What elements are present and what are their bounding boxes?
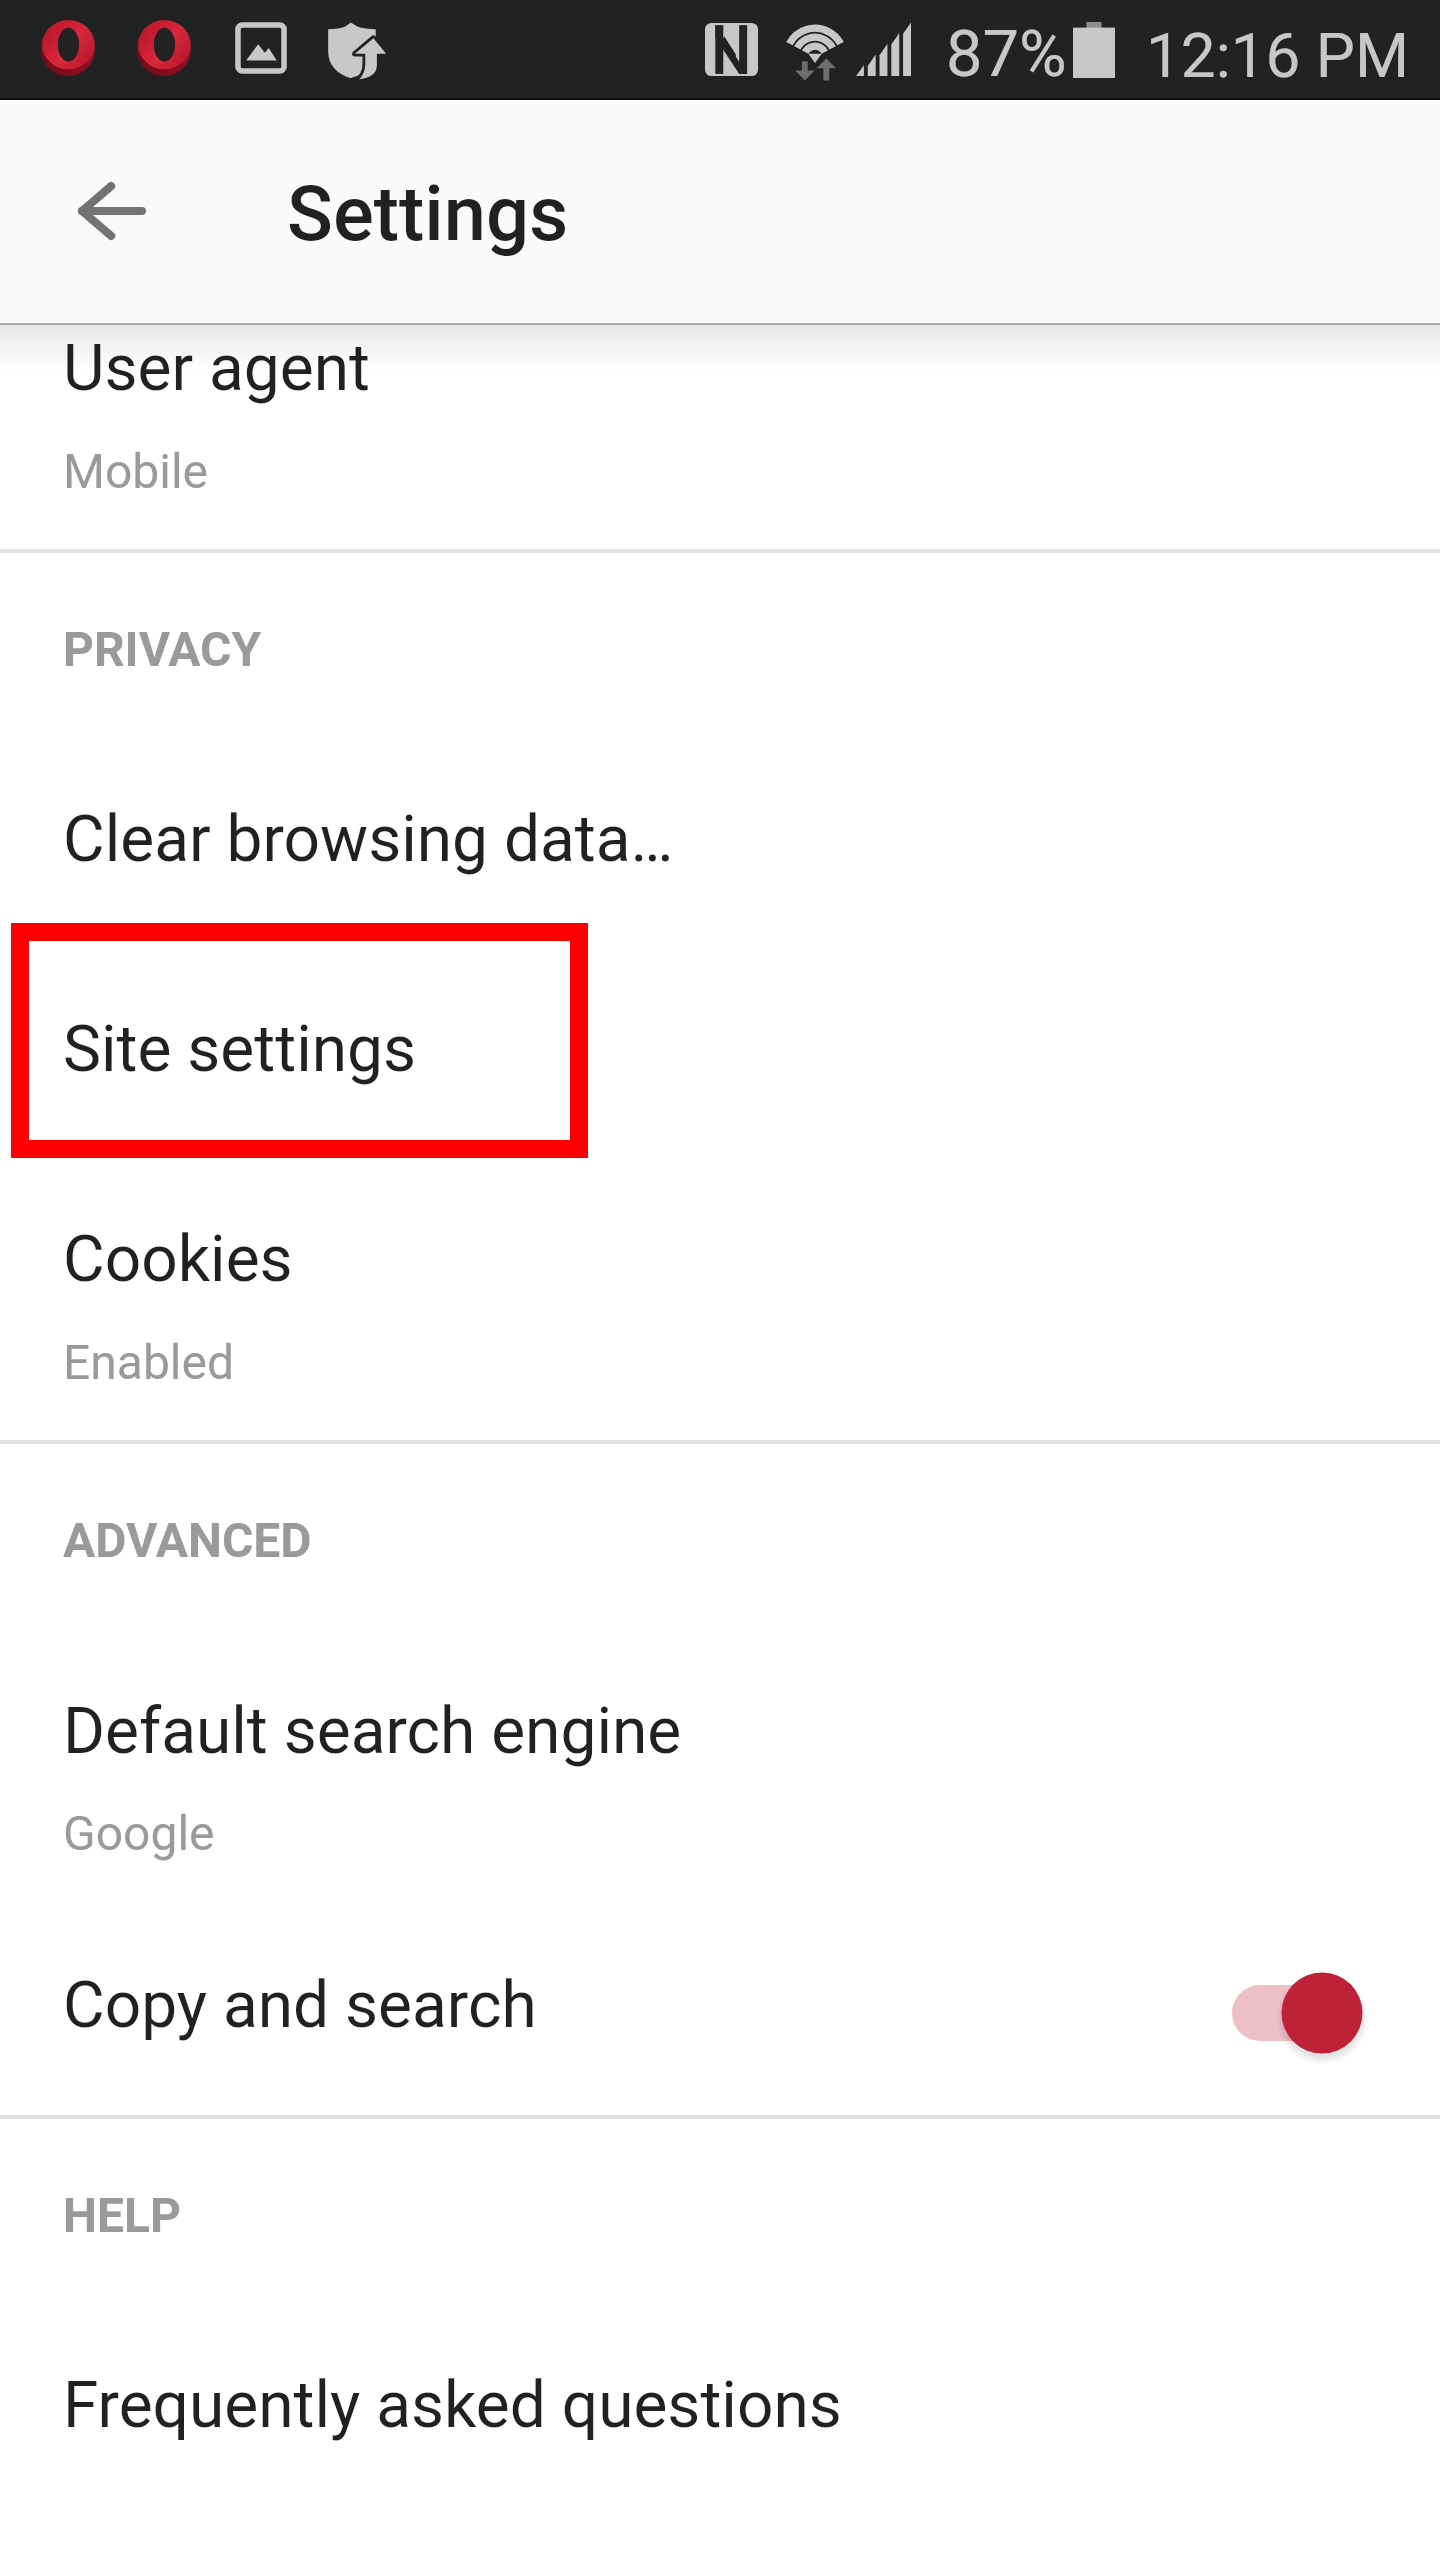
staticText: Default search engine <box>63 1694 682 1769</box>
button[interactable]: Copy and search <box>0 1930 1440 2115</box>
button[interactable]: Cookies <box>0 1158 1440 1440</box>
staticText: Site settings <box>63 1012 417 1087</box>
staticText: Mobile <box>63 443 209 499</box>
staticText: PRIVACY <box>63 621 262 677</box>
staticText: Google <box>63 1805 215 1861</box>
button[interactable]: Clear browsing data… <box>0 760 1440 930</box>
staticText: 87% <box>946 16 1067 92</box>
staticText: Settings <box>287 169 569 258</box>
button[interactable]: Back <box>39 138 185 284</box>
staticText: Enabled <box>63 1334 235 1390</box>
staticText: Clear browsing data… <box>63 802 674 877</box>
staticText: Cookies <box>63 1222 293 1297</box>
button[interactable]: Default search engine <box>0 1650 1440 1930</box>
button[interactable]: User agent <box>0 330 1440 549</box>
staticText: Frequently asked questions <box>63 2368 842 2443</box>
button[interactable]: Frequently asked questions <box>0 2330 1440 2520</box>
button[interactable]: Site settings <box>0 930 1440 1158</box>
staticText: 12:16 PM <box>1146 19 1410 92</box>
staticText: ADVANCED <box>63 1512 312 1568</box>
staticText: User agent <box>63 331 370 406</box>
staticText: Copy and search <box>63 1968 537 2043</box>
staticText: HELP <box>63 2187 181 2243</box>
